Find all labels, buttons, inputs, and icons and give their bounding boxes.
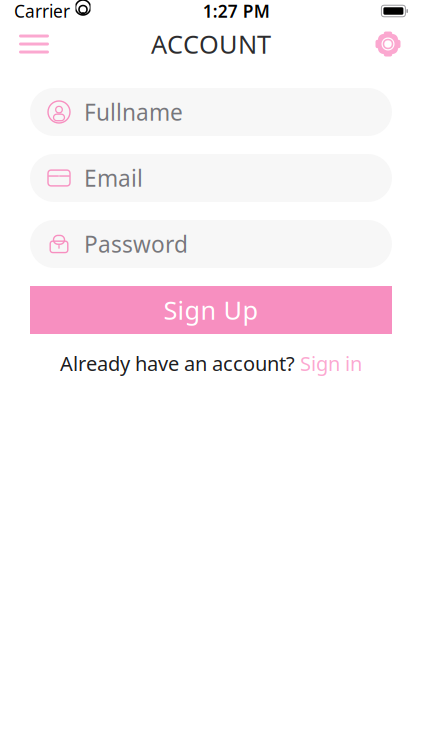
button[interactable]: Menu — [12, 22, 56, 66]
staticText: Sign in — [300, 350, 362, 377]
staticText: Already have an account? — [60, 350, 295, 377]
button[interactable]: Sign Up — [30, 286, 392, 334]
button[interactable]: Email — [30, 154, 392, 202]
staticText: ACCOUNT — [151, 27, 271, 61]
staticText: Carrier — [14, 0, 70, 22]
button[interactable]: Password — [30, 220, 392, 268]
staticText: Fullname — [84, 97, 183, 127]
staticText: Password — [84, 229, 188, 259]
button[interactable]: Settings — [366, 22, 410, 66]
button[interactable]: Sign in — [300, 350, 362, 377]
button[interactable]: Fullname — [30, 88, 392, 136]
staticText: 1:27 PM — [203, 0, 270, 22]
staticText: Sign Up — [163, 293, 258, 327]
staticText: Email — [84, 163, 143, 193]
